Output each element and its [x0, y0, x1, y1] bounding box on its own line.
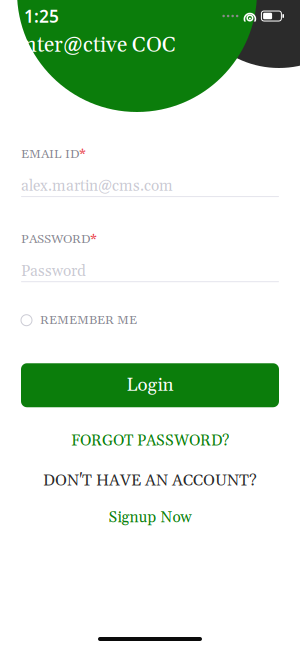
staticText: Signup Now	[108, 508, 191, 527]
staticText: PASSWORD	[21, 231, 90, 247]
staticText: Inter@ctive COC	[16, 32, 176, 59]
button[interactable]: FORGOT PASSWORD?	[21, 426, 279, 456]
button[interactable]: Login	[21, 363, 279, 407]
button[interactable]: REMEMBER ME	[21, 308, 279, 332]
staticText: *	[79, 145, 86, 164]
staticText: EMAIL ID	[21, 146, 79, 162]
button[interactable]: Password	[21, 249, 279, 282]
staticText: FORGOT PASSWORD?	[71, 431, 229, 451]
button[interactable]: Signup Now	[21, 503, 279, 532]
staticText: *	[90, 230, 97, 249]
staticText: 1:25	[24, 4, 59, 27]
button[interactable]: alex.martin@cms.com	[21, 164, 279, 197]
staticText: Password	[21, 262, 86, 281]
staticText: Login	[126, 373, 173, 397]
staticText: alex.martin@cms.com	[21, 177, 173, 196]
staticText: REMEMBER ME	[40, 312, 137, 328]
staticText: DON'T HAVE AN ACCOUNT?	[43, 471, 257, 491]
